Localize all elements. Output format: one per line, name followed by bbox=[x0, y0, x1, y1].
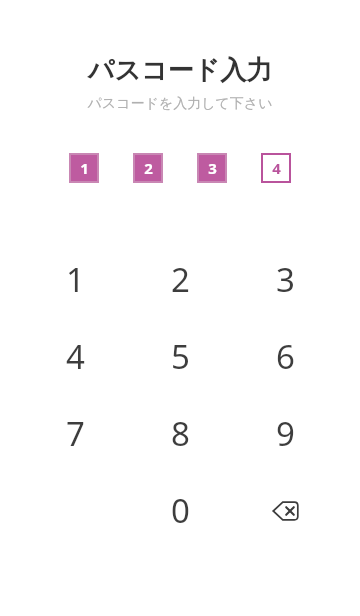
staticText: 9 bbox=[276, 411, 295, 456]
staticText: 6 bbox=[276, 334, 295, 379]
button[interactable]: 0 bbox=[128, 472, 233, 549]
staticText: 5 bbox=[171, 334, 190, 379]
staticText: 4 bbox=[272, 158, 281, 178]
staticText: 2 bbox=[171, 257, 190, 302]
button[interactable]: 4 bbox=[23, 318, 128, 395]
button[interactable]: 3 bbox=[233, 241, 338, 318]
button[interactable]: 7 bbox=[23, 395, 128, 472]
staticText: 3 bbox=[276, 257, 295, 302]
button[interactable]: 2 bbox=[128, 241, 233, 318]
staticText: パスコード入力 bbox=[0, 54, 360, 87]
staticText: 2 bbox=[144, 158, 153, 178]
staticText: 8 bbox=[171, 411, 190, 456]
staticText: 3 bbox=[208, 158, 217, 178]
button[interactable]: 8 bbox=[128, 395, 233, 472]
staticText: 1 bbox=[66, 257, 85, 302]
staticText: 7 bbox=[66, 411, 85, 456]
button[interactable]: Backspace bbox=[233, 472, 338, 549]
staticText: パスコードを入力して下さい bbox=[0, 95, 360, 113]
staticText: 0 bbox=[171, 488, 190, 533]
button[interactable]: 9 bbox=[233, 395, 338, 472]
staticText: 1 bbox=[80, 158, 89, 178]
button[interactable]: 1 bbox=[23, 241, 128, 318]
button[interactable]: 6 bbox=[233, 318, 338, 395]
button[interactable]: 5 bbox=[128, 318, 233, 395]
staticText: 4 bbox=[66, 334, 85, 379]
